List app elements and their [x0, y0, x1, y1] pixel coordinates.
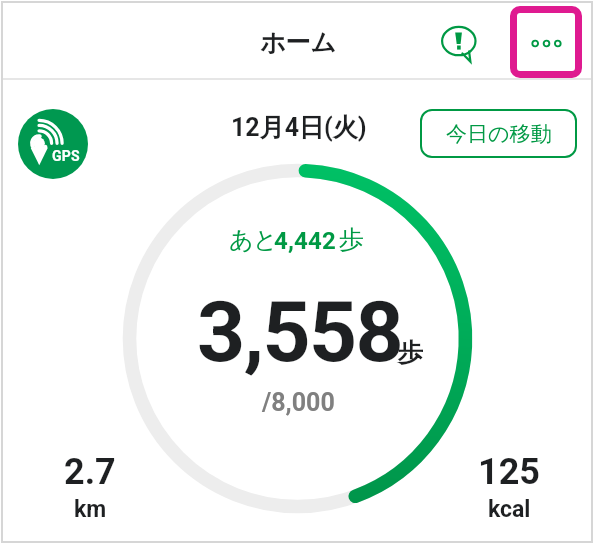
staticText: 3,558: [197, 283, 402, 381]
staticText: km: [74, 496, 107, 523]
staticText: 12月4日(火): [231, 112, 367, 143]
staticText: 125: [478, 451, 540, 493]
staticText: 歩: [339, 224, 364, 255]
button[interactable]: GPS: [18, 109, 88, 179]
staticText: kcal: [488, 496, 531, 523]
button[interactable]: Alerts: [431, 15, 485, 69]
staticText: 今日の移動: [446, 121, 552, 147]
button[interactable]: More options: [510, 6, 582, 78]
staticText: ホーム: [260, 27, 337, 58]
staticText: GPS: [52, 148, 80, 164]
staticText: あと: [229, 225, 277, 255]
button[interactable]: 今日の移動: [420, 109, 577, 158]
staticText: 2.7: [64, 451, 116, 493]
staticText: 4,442: [274, 227, 336, 255]
staticText: 歩: [398, 337, 423, 368]
staticText: /8,000: [262, 388, 335, 417]
